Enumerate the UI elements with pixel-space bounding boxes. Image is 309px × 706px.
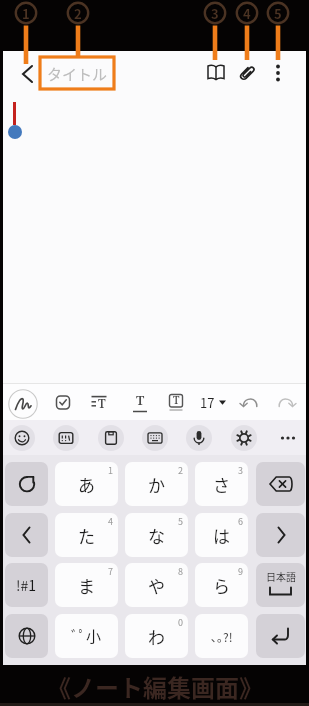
button[interactable]: T bbox=[162, 388, 190, 416]
staticText: 17 bbox=[200, 393, 215, 412]
staticText: ﾞﾟ小 bbox=[71, 625, 102, 647]
button[interactable]: T bbox=[126, 388, 154, 416]
button[interactable] bbox=[8, 389, 38, 419]
button[interactable] bbox=[231, 425, 257, 451]
staticText: 5 bbox=[274, 4, 282, 23]
button[interactable]: ま bbox=[55, 563, 118, 607]
button[interactable] bbox=[5, 614, 48, 658]
button[interactable] bbox=[186, 425, 212, 451]
staticText: は bbox=[213, 523, 230, 548]
staticText: 3 bbox=[211, 4, 219, 23]
staticText: 日本語 bbox=[266, 569, 296, 583]
staticText: T bbox=[98, 395, 106, 411]
staticText: あ bbox=[78, 472, 95, 497]
staticText: 6 bbox=[238, 515, 243, 528]
staticText: 2 bbox=[178, 464, 183, 477]
button[interactable] bbox=[262, 57, 294, 89]
button[interactable]: わ bbox=[125, 614, 188, 658]
button[interactable] bbox=[11, 58, 43, 90]
staticText: 2 bbox=[74, 4, 82, 23]
button[interactable] bbox=[236, 388, 264, 416]
staticText: わ bbox=[148, 624, 165, 649]
staticText: 《ノート編集画面》 bbox=[47, 669, 263, 704]
staticText: ま bbox=[78, 573, 95, 598]
button[interactable] bbox=[5, 513, 48, 557]
staticText: 4 bbox=[243, 4, 251, 23]
button[interactable] bbox=[142, 425, 168, 451]
button[interactable] bbox=[200, 57, 232, 89]
staticText: 8 bbox=[178, 565, 183, 578]
button[interactable]: ､｡?! bbox=[195, 614, 248, 658]
staticText: 4 bbox=[108, 515, 113, 528]
button[interactable]: タイトル bbox=[43, 59, 163, 89]
button[interactable]: さ bbox=[195, 462, 248, 506]
staticText: た bbox=[78, 523, 95, 548]
staticText: T bbox=[173, 393, 180, 407]
button[interactable] bbox=[53, 425, 79, 451]
button[interactable] bbox=[275, 425, 301, 451]
button[interactable]: 17 bbox=[194, 388, 230, 416]
button[interactable] bbox=[231, 57, 263, 89]
button[interactable]: ら bbox=[195, 563, 248, 607]
staticText: な bbox=[148, 523, 165, 548]
button[interactable]: T bbox=[85, 388, 113, 416]
staticText: 5 bbox=[178, 515, 183, 528]
button[interactable]: 日本語 bbox=[256, 563, 305, 607]
button[interactable]: ﾞﾟ小 bbox=[55, 614, 118, 658]
button[interactable]: は bbox=[195, 513, 248, 557]
staticText: 7 bbox=[108, 565, 113, 578]
staticText: 9 bbox=[238, 565, 243, 578]
staticText: さ bbox=[213, 472, 230, 497]
staticText: ら bbox=[213, 573, 230, 598]
staticText: 3 bbox=[238, 464, 243, 477]
button[interactable] bbox=[256, 513, 305, 557]
button[interactable]: や bbox=[125, 563, 188, 607]
button[interactable] bbox=[49, 388, 77, 416]
button[interactable] bbox=[98, 425, 124, 451]
button[interactable] bbox=[256, 614, 305, 658]
staticText: や bbox=[148, 573, 165, 598]
button[interactable]: あ bbox=[55, 462, 118, 506]
staticText: 1 bbox=[22, 4, 30, 23]
button[interactable]: か bbox=[125, 462, 188, 506]
button[interactable] bbox=[272, 388, 300, 416]
staticText: !#1 bbox=[16, 575, 37, 595]
button[interactable] bbox=[9, 425, 35, 451]
button[interactable] bbox=[5, 462, 48, 506]
button[interactable]: た bbox=[55, 513, 118, 557]
staticText: タイトル bbox=[47, 63, 108, 85]
button[interactable] bbox=[256, 462, 305, 506]
staticText: か bbox=[148, 472, 165, 497]
button[interactable]: !#1 bbox=[5, 563, 48, 607]
staticText: T bbox=[136, 391, 145, 409]
button[interactable]: な bbox=[125, 513, 188, 557]
staticText: 1 bbox=[108, 464, 113, 477]
staticText: ､｡?! bbox=[211, 628, 233, 645]
staticText: 0 bbox=[178, 616, 183, 629]
